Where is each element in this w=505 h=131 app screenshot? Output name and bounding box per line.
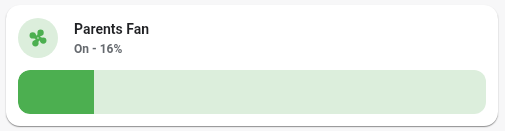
button[interactable] bbox=[18, 70, 486, 114]
staticText: Parents Fan bbox=[74, 21, 150, 37]
staticText: On - 16% bbox=[74, 42, 123, 56]
button[interactable]: Fan bbox=[6, 5, 498, 126]
other: Fan bbox=[28, 28, 48, 48]
